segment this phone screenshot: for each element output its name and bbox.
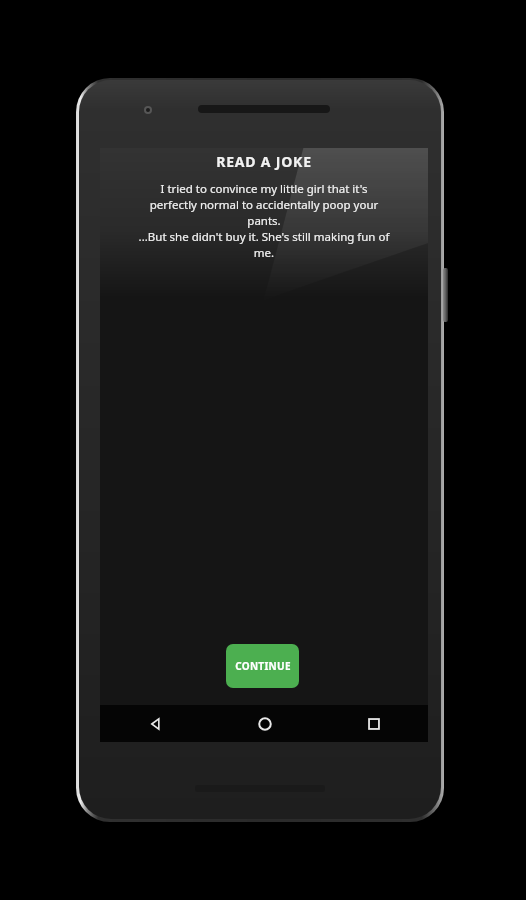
button[interactable]: Recent apps	[319, 705, 428, 742]
staticText: CONTINUE	[235, 659, 291, 673]
staticText: READ A JOKE	[216, 152, 312, 171]
button[interactable]: Back	[100, 705, 210, 742]
button[interactable]: CONTINUE	[226, 644, 299, 688]
button[interactable]: Home	[210, 705, 319, 742]
staticText: I tried to convince my little girl that …	[108, 181, 420, 261]
